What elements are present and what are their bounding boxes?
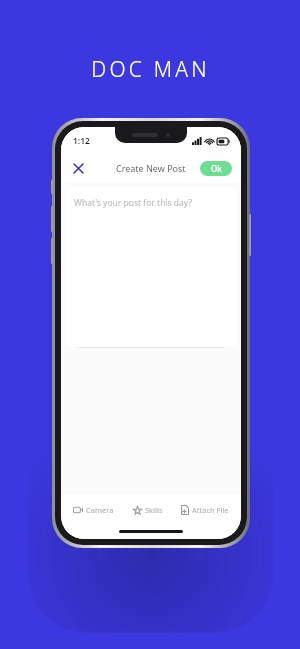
button[interactable]: Ok [200,161,232,176]
button[interactable]: What's your post for this day? [65,187,237,347]
staticText: DOC MAN [91,55,210,84]
staticText: Camera [86,505,114,515]
staticText: Ok [211,163,222,174]
button[interactable]: Skills [129,502,167,518]
staticText: 1:12 [73,135,90,147]
button[interactable]: Attach File [177,502,233,518]
staticText: What's your post for this day? [74,197,193,209]
staticText: Attach File [192,505,229,515]
button[interactable]: Close [68,158,88,178]
staticText: Create New Post [116,162,186,174]
staticText: Skills [145,505,163,515]
button[interactable]: Camera [69,502,118,518]
